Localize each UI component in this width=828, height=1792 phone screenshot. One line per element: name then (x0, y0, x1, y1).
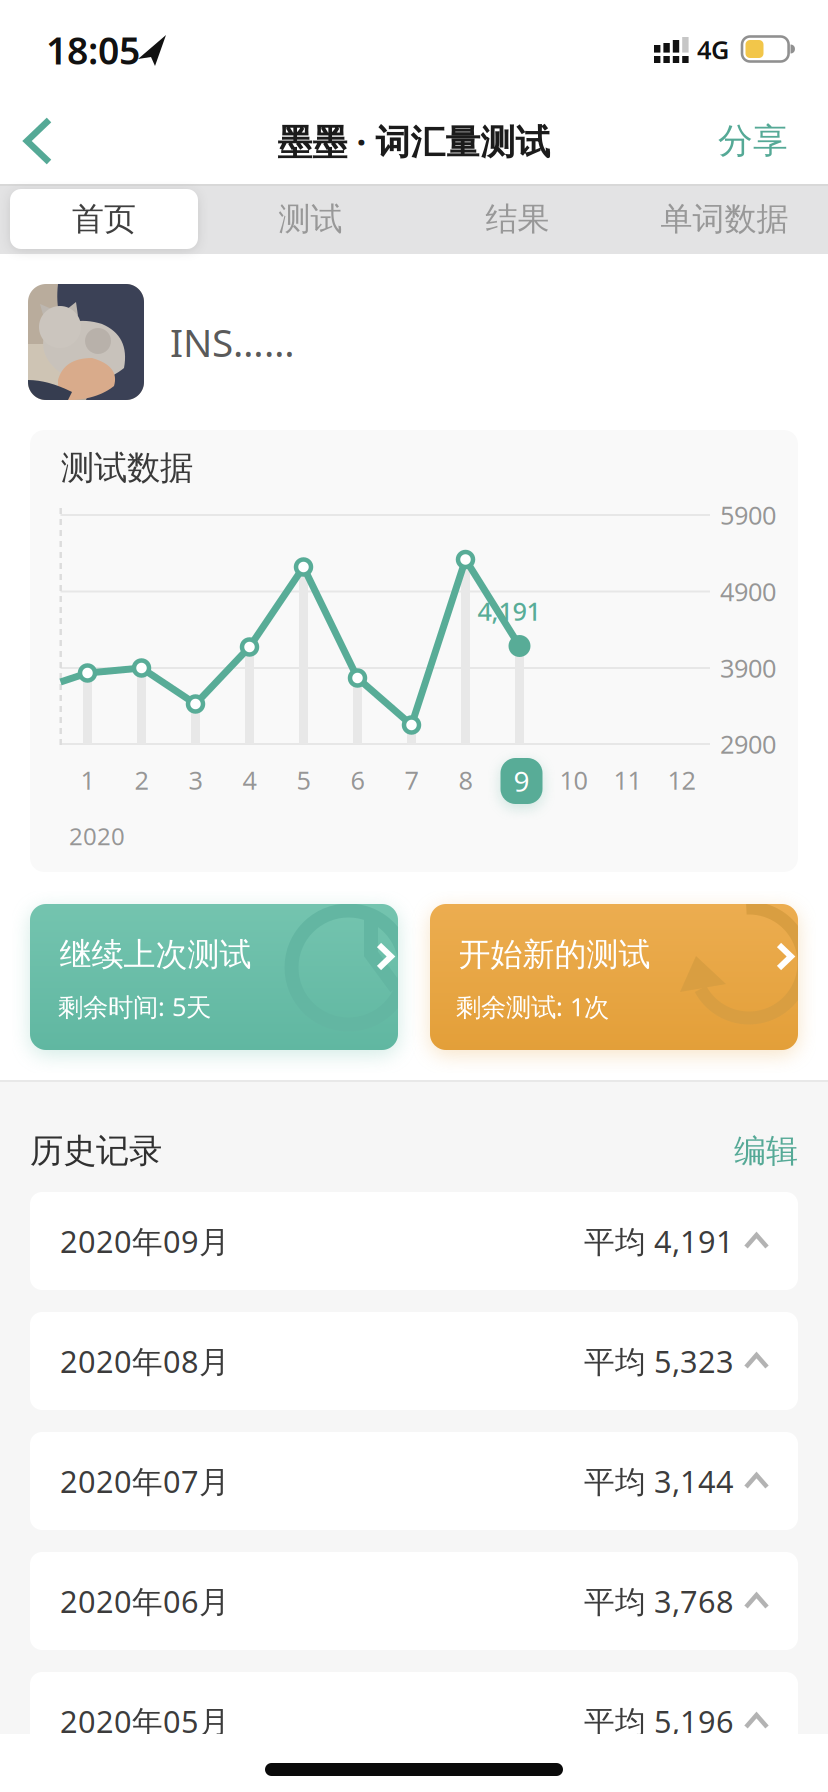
button[interactable]: 测试 (207, 185, 414, 253)
staticText: 4900 (720, 575, 776, 608)
staticText: 首页 (72, 199, 136, 239)
button[interactable]: INS…… (28, 284, 798, 400)
staticText: 平均 5,196 (584, 1701, 734, 1741)
staticText: 5900 (720, 498, 776, 532)
staticText: 9 (513, 762, 529, 800)
staticText: 4 (242, 763, 256, 797)
button[interactable]: 2020年06月 (30, 1552, 798, 1650)
staticText: 12 (667, 763, 695, 797)
button[interactable]: 2020年08月 (30, 1312, 798, 1410)
staticText: 2 (134, 763, 148, 797)
staticText: 7 (404, 763, 418, 797)
staticText: 2020年08月 (60, 1341, 230, 1381)
staticText: 单词数据 (660, 199, 788, 239)
button[interactable]: 2020年05月 (30, 1672, 798, 1770)
staticText: 分享 (718, 120, 788, 162)
staticText: 测试 (278, 199, 342, 239)
staticText: 3 (188, 763, 202, 797)
button[interactable]: 继续上次测试 (30, 904, 398, 1050)
button[interactable]: 单词数据 (621, 185, 828, 253)
button[interactable]: 首页 (0, 185, 207, 253)
staticText: 6 (350, 763, 364, 797)
button[interactable]: 开始新的测试 (430, 904, 798, 1050)
staticText: 2020年06月 (60, 1581, 230, 1621)
button[interactable]: 2020年09月 (30, 1192, 798, 1290)
staticText: 平均 3,768 (584, 1581, 734, 1621)
staticText: 5 (296, 763, 310, 797)
staticText: 10 (559, 763, 587, 797)
staticText: 11 (613, 763, 641, 797)
button[interactable]: 2020年07月 (30, 1432, 798, 1530)
staticText: 开始新的测试 (459, 935, 651, 974)
button[interactable]: 分享 (698, 111, 808, 171)
staticText: 4,191 (477, 594, 540, 628)
staticText: 2020 (69, 820, 125, 852)
staticText: 2020年07月 (60, 1461, 230, 1501)
staticText: 剩余时间: 5天 (58, 990, 211, 1023)
staticText: 墨墨 · 词汇量测试 (277, 118, 550, 164)
staticText: 结果 (485, 199, 549, 239)
staticText: 剩余测试: 1次 (456, 990, 609, 1023)
staticText: 测试数据 (61, 447, 193, 488)
staticText: 1 (80, 763, 94, 797)
staticText: 18:05 (46, 25, 140, 75)
staticText: INS…… (170, 316, 295, 368)
staticText: 编辑 (734, 1131, 798, 1171)
staticText: 继续上次测试 (59, 935, 251, 974)
button[interactable]: 结果 (414, 185, 621, 253)
staticText: 2020年09月 (60, 1221, 230, 1261)
staticText: 3900 (720, 651, 776, 685)
staticText: 8 (458, 763, 472, 797)
staticText: 4G (697, 33, 729, 66)
staticText: 历史记录 (30, 1130, 162, 1171)
staticText: 2020年05月 (60, 1701, 230, 1741)
staticText: 2900 (720, 727, 776, 761)
staticText: 平均 5,323 (584, 1341, 734, 1381)
button[interactable]: Back (14, 114, 70, 168)
button[interactable]: 编辑 (711, 1121, 821, 1181)
staticText: 平均 4,191 (584, 1221, 734, 1261)
staticText: 平均 3,144 (584, 1461, 734, 1501)
